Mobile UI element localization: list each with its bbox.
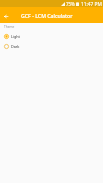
button[interactable]: Navigate up bbox=[0, 9, 13, 22]
staticText: Light bbox=[11, 34, 20, 39]
button[interactable]: Light bbox=[0, 31, 103, 41]
staticText: GCF - LCM Calculator bbox=[21, 12, 73, 19]
button[interactable]: Dark bbox=[0, 41, 103, 51]
staticText: 11:47 PM bbox=[81, 1, 102, 8]
staticText: Theme bbox=[4, 25, 15, 29]
staticText: 75% bbox=[66, 1, 75, 7]
staticText: Dark bbox=[11, 44, 20, 49]
